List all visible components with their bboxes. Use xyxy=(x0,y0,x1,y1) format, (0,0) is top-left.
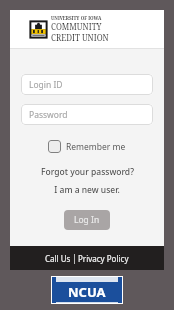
staticText: Log In xyxy=(74,214,100,226)
staticText: NCUA xyxy=(68,283,106,301)
button[interactable]: Call Us xyxy=(42,250,74,267)
staticText: UNIVERSITY OF IOWA xyxy=(51,15,102,21)
staticText: Remember me xyxy=(66,141,126,153)
staticText: Forgot your password? xyxy=(41,166,134,178)
button[interactable]: Forgot your password? xyxy=(35,165,140,179)
button[interactable]: Remember me xyxy=(44,138,130,155)
button[interactable]: Privacy Policy xyxy=(75,250,132,267)
staticText: I am a new user. xyxy=(54,184,120,196)
other: NCUA federally insured xyxy=(52,277,122,303)
staticText: Login ID xyxy=(29,79,63,91)
staticText: Privacy Policy xyxy=(78,253,129,264)
button[interactable]: Password xyxy=(21,104,153,125)
staticText: CREDIT UNION xyxy=(51,32,109,43)
staticText: Password xyxy=(29,109,68,121)
button[interactable]: Login ID xyxy=(21,74,153,95)
button[interactable]: Log In xyxy=(64,210,110,230)
staticText: Call Us xyxy=(45,253,71,264)
staticText: COMMUNITY xyxy=(51,21,102,32)
button[interactable]: I am a new user. xyxy=(48,183,126,197)
